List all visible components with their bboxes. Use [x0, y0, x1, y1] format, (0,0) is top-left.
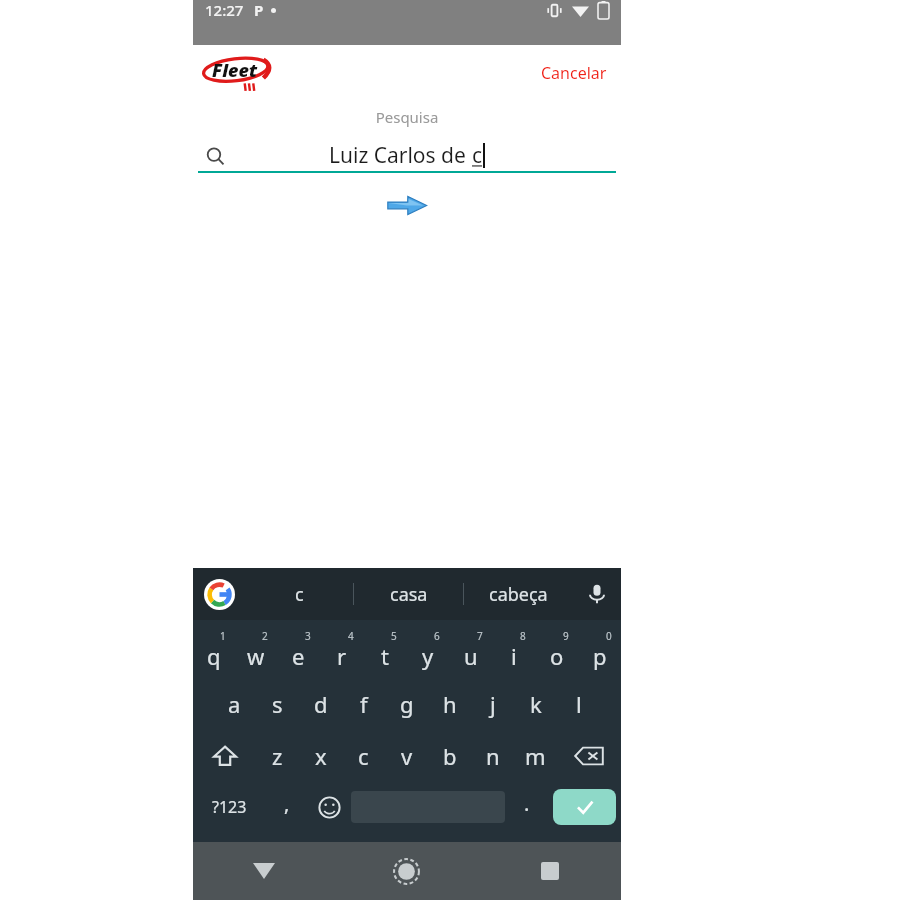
- button[interactable]: Emoji: [308, 782, 351, 832]
- other: Search: [206, 147, 225, 166]
- staticText: g: [400, 689, 414, 719]
- button[interactable]: k: [514, 678, 557, 730]
- staticText: b: [443, 741, 457, 771]
- staticText: s: [272, 689, 283, 719]
- staticText: ?123: [212, 796, 247, 818]
- button[interactable]: v: [385, 730, 428, 782]
- staticText: .: [524, 790, 530, 817]
- button[interactable]: 0: [578, 626, 621, 678]
- staticText: 4: [348, 629, 354, 643]
- button[interactable]: Go: [387, 193, 427, 217]
- button[interactable]: 4: [320, 626, 363, 678]
- staticText: 6: [434, 629, 440, 643]
- staticText: k: [530, 689, 542, 719]
- button[interactable]: s: [256, 678, 299, 730]
- button[interactable]: b: [428, 730, 471, 782]
- button[interactable]: Cancelar: [527, 56, 621, 90]
- button[interactable]: m: [514, 730, 557, 782]
- staticText: y: [422, 641, 434, 671]
- button[interactable]: 8: [492, 626, 535, 678]
- staticText: p: [593, 641, 607, 671]
- staticText: 1: [220, 629, 226, 643]
- staticText: c: [358, 741, 369, 771]
- staticText: i: [511, 641, 517, 671]
- staticText: Fleet: [212, 58, 258, 83]
- staticText: 2: [262, 629, 268, 643]
- staticText: 9: [563, 629, 569, 643]
- button[interactable]: h: [428, 678, 471, 730]
- button[interactable]: Home: [335, 842, 478, 900]
- staticText: 12:27: [205, 0, 244, 20]
- staticText: 3: [305, 629, 311, 643]
- staticText: j: [490, 689, 496, 719]
- staticText: 5: [391, 629, 397, 643]
- button[interactable]: 7: [449, 626, 492, 678]
- staticText: m: [525, 741, 546, 771]
- staticText: Luiz Carlos de: [329, 141, 472, 170]
- button[interactable]: g: [385, 678, 428, 730]
- button[interactable]: a: [213, 678, 256, 730]
- staticText: u: [464, 641, 478, 671]
- button[interactable]: 9: [535, 626, 578, 678]
- staticText: z: [272, 741, 283, 771]
- staticText: h: [443, 689, 457, 719]
- button[interactable]: Enter: [553, 789, 616, 825]
- staticText: ,: [284, 790, 290, 817]
- button[interactable]: 1: [193, 626, 235, 678]
- button[interactable]: ?123: [193, 782, 265, 832]
- staticText: x: [315, 741, 327, 771]
- staticText: 8: [520, 629, 526, 643]
- button[interactable]: d: [299, 678, 342, 730]
- button[interactable]: Backspace: [557, 730, 621, 782]
- staticText: l: [576, 689, 582, 719]
- staticText: c: [472, 141, 483, 170]
- staticText: 0: [606, 629, 612, 643]
- staticText: casa: [390, 582, 428, 607]
- staticText: t: [381, 641, 389, 671]
- staticText: v: [401, 741, 413, 771]
- staticText: 7: [477, 629, 483, 643]
- staticText: r: [337, 641, 347, 671]
- button[interactable]: f: [342, 678, 385, 730]
- staticText: n: [486, 741, 500, 771]
- button[interactable]: .: [505, 782, 548, 832]
- button[interactable]: cabeça: [464, 568, 573, 620]
- button[interactable]: 6: [406, 626, 449, 678]
- staticText: cabeça: [489, 582, 548, 607]
- button[interactable]: j: [471, 678, 514, 730]
- staticText: Cancelar: [541, 62, 607, 84]
- staticText: q: [207, 641, 221, 671]
- staticText: o: [550, 641, 564, 671]
- button[interactable]: Back: [193, 842, 335, 900]
- staticText: c: [295, 582, 304, 607]
- staticText: P: [254, 0, 264, 20]
- button[interactable]: Shift: [193, 730, 256, 782]
- button[interactable]: 3: [277, 626, 320, 678]
- button[interactable]: Fleet logo: [201, 49, 279, 93]
- button[interactable]: casa: [354, 568, 463, 620]
- staticText: w: [247, 641, 265, 671]
- button[interactable]: ,: [265, 782, 308, 832]
- staticText: e: [292, 641, 305, 671]
- button[interactable]: c: [342, 730, 385, 782]
- staticText: Pesquisa: [193, 107, 621, 127]
- button[interactable]: Google: [193, 568, 245, 620]
- button[interactable]: x: [299, 730, 342, 782]
- button[interactable]: Voice input: [573, 568, 621, 620]
- button[interactable]: c: [245, 568, 353, 620]
- staticText: f: [360, 689, 368, 719]
- button[interactable]: 5: [363, 626, 406, 678]
- button[interactable]: Recents: [478, 842, 621, 900]
- staticText: a: [228, 689, 241, 719]
- button[interactable]: l: [557, 678, 600, 730]
- staticText: d: [314, 689, 328, 719]
- button[interactable]: Search: [198, 139, 616, 173]
- button[interactable]: n: [471, 730, 514, 782]
- button[interactable]: 2: [235, 626, 277, 678]
- button[interactable]: z: [256, 730, 299, 782]
